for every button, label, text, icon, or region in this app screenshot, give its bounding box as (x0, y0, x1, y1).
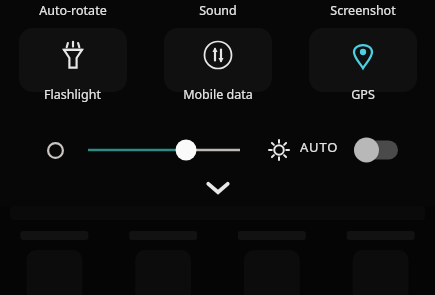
button[interactable]: Auto brightness (264, 135, 294, 165)
button[interactable]: Collapse quick settings (191, 172, 245, 202)
button[interactable]: AUTO (300, 138, 339, 156)
staticText: GPS (351, 86, 375, 103)
button[interactable]: Auto brightness toggle (352, 136, 404, 164)
button[interactable]: GPS (290, 26, 435, 114)
staticText: AUTO (300, 138, 339, 156)
button[interactable]: Mobile data (145, 26, 290, 114)
staticText: Auto-rotate (39, 2, 107, 19)
button[interactable]: Screenshot (290, 2, 435, 19)
staticText: Flashlight (44, 86, 101, 103)
button[interactable]: Auto-rotate (0, 2, 145, 19)
button[interactable]: Low brightness (40, 135, 70, 165)
button[interactable]: Flashlight (0, 26, 145, 114)
staticText: Sound (199, 2, 237, 19)
staticText: Mobile data (183, 86, 253, 103)
staticText: Screenshot (330, 2, 396, 19)
button[interactable]: Sound (145, 2, 290, 19)
button[interactable]: Brightness slider (88, 130, 240, 170)
